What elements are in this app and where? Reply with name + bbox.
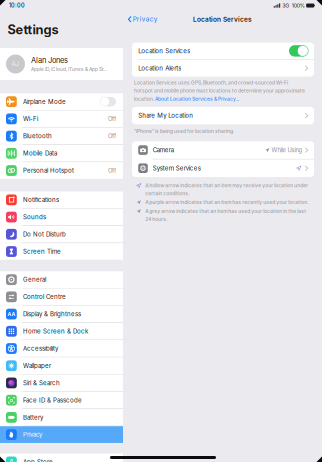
staticText: Settings (7, 22, 58, 37)
staticText: Location Services (138, 47, 190, 55)
staticText: hotspot and mobile phone mast locations … (134, 88, 305, 94)
staticText: About Location Services & Privacy... (155, 96, 239, 102)
staticText: Off (108, 167, 116, 174)
staticText: Personal Hotspot (23, 167, 74, 174)
staticText: Off (108, 115, 116, 122)
staticText: location. (134, 96, 155, 102)
staticText: Location Alerts (138, 64, 181, 72)
button[interactable]: Screen Time (0, 243, 123, 260)
staticText: Location Services uses GPS, Bluetooth, a… (134, 80, 288, 86)
staticText: “iPhone” is being used for location shar… (134, 128, 234, 134)
staticText: A hollow arrow indicates that an item ma… (145, 182, 308, 188)
staticText: Home Screen & Dock (23, 328, 88, 335)
button[interactable]: Face ID & Passcode (0, 392, 123, 408)
button[interactable]: Camera (132, 141, 314, 159)
staticText: 10:00 (9, 2, 25, 9)
staticText: 100% (292, 2, 305, 9)
staticText: Privacy (23, 431, 42, 438)
button[interactable]: Wallpaper (0, 357, 123, 374)
staticText: Privacy (133, 15, 158, 23)
staticText: System Services (153, 164, 201, 172)
staticText: Sounds (23, 213, 46, 221)
button[interactable]: Home Screen & Dock (0, 323, 123, 340)
staticText: Off (108, 133, 116, 140)
staticText: Airplane Mode (23, 98, 66, 105)
button[interactable]: Bluetooth (0, 128, 123, 144)
staticText: Siri & Search (23, 379, 60, 387)
staticText: Battery (23, 414, 43, 421)
staticText: Notifications (23, 196, 59, 203)
staticText: Do Not Disturb (23, 231, 66, 238)
staticText: A grey arrow indicates that an item has … (145, 208, 306, 214)
staticText: Display & Brightness (23, 310, 81, 318)
staticText: A (9, 458, 14, 462)
button[interactable]: Accessibility (0, 340, 123, 357)
button[interactable]: General (0, 271, 123, 288)
staticText: Mobile Data (23, 150, 57, 157)
button[interactable]: AA (0, 306, 123, 322)
button[interactable]: Wi-Fi (0, 110, 123, 127)
staticText: A purple arrow indicates that an item ha… (145, 199, 308, 205)
button[interactable]: Location Services (132, 42, 314, 59)
staticText: 24 hours. (145, 216, 167, 222)
staticText: Bluetooth (23, 132, 52, 140)
button[interactable]: A (0, 454, 123, 462)
button[interactable]: Do Not Disturb (0, 226, 123, 243)
button[interactable]: Personal Hotspot (0, 162, 123, 179)
button[interactable]: Share My Location (132, 107, 314, 124)
staticText: AJ (11, 60, 19, 68)
button[interactable]: Location Alerts (132, 60, 314, 77)
button[interactable]: Sounds (0, 209, 123, 225)
staticText: While Using (272, 146, 303, 154)
staticText: AA (7, 311, 15, 317)
staticText: Share My Location (138, 112, 193, 119)
button[interactable]: Airplane Mode (0, 93, 123, 110)
staticText: Face ID & Passcode (23, 396, 82, 404)
staticText: certain conditions. (145, 190, 189, 196)
button[interactable]: Notifications (0, 191, 123, 208)
button[interactable]: Siri & Search (0, 375, 123, 391)
staticText: Screen Time (23, 248, 61, 255)
staticText: App Store (23, 458, 53, 462)
button[interactable]: Privacy (0, 426, 123, 443)
staticText: Control Centre (23, 293, 66, 300)
staticText: Wallpaper (23, 362, 51, 369)
button[interactable]: System Services (132, 159, 314, 177)
button[interactable]: Control Centre (0, 288, 123, 305)
staticText: Wi-Fi (23, 115, 38, 123)
staticText: Camera (153, 146, 174, 154)
button[interactable]: Battery (0, 409, 123, 426)
staticText: Alan Jones (31, 56, 68, 65)
button[interactable]: Privacy (123, 11, 158, 27)
staticText: Apple ID, iCloud, iTunes & App St... (31, 66, 107, 72)
staticText: 3G (282, 2, 289, 9)
staticText: Accessibility (23, 345, 58, 352)
staticText: General (23, 276, 46, 283)
button[interactable]: Mobile Data (0, 145, 123, 162)
staticText: Location Services (193, 15, 252, 23)
button[interactable]: AJ (0, 48, 123, 80)
